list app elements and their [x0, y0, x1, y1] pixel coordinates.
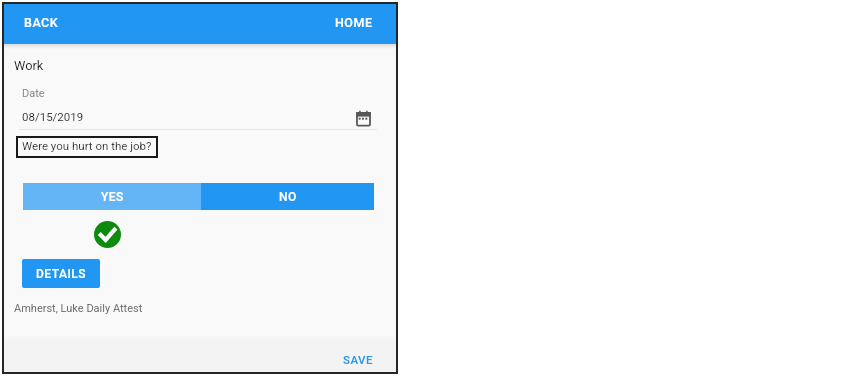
staticText: Amherst, Luke Daily Attest [14, 302, 143, 315]
staticText: DETAILS [36, 267, 87, 281]
staticText: Were you hurt on the job? [22, 139, 152, 152]
button[interactable]: NO [201, 183, 374, 210]
button[interactable]: BACK [10, 2, 73, 43]
staticText: 08/15/2019 [22, 110, 84, 123]
button[interactable]: SAVE [249, 343, 388, 374]
button[interactable]: DETAILS [22, 259, 100, 288]
button[interactable]: Were you hurt on the job? [16, 136, 158, 158]
button[interactable]: YES [23, 183, 201, 210]
staticText: NO [279, 190, 297, 204]
button[interactable]: Verified [94, 221, 121, 248]
staticText: SAVE [343, 353, 374, 366]
button[interactable]: Pick date [354, 109, 373, 128]
staticText: BACK [24, 15, 59, 30]
staticText: HOME [335, 15, 373, 30]
button[interactable]: HOME [321, 2, 387, 43]
staticText: Date [22, 87, 45, 100]
staticText: Work [14, 58, 44, 73]
staticText: YES [101, 190, 124, 204]
